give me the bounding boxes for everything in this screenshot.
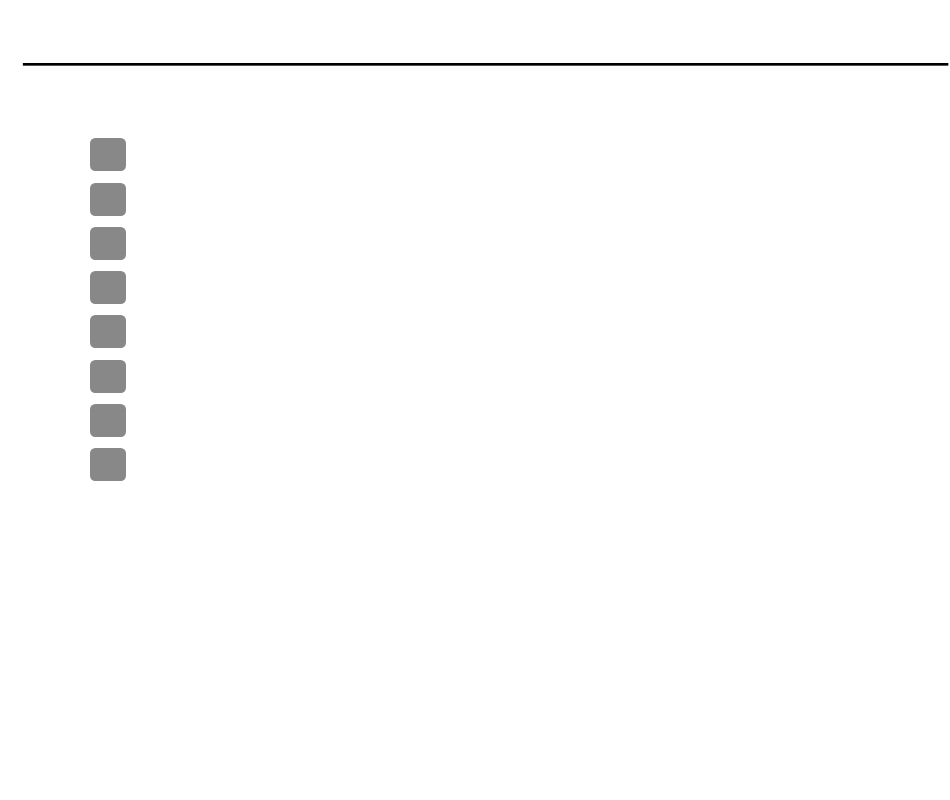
- button[interactable]: List item 4: [0, 265, 950, 309]
- other: Item icon: [90, 183, 126, 216]
- button[interactable]: List item 5: [0, 309, 950, 354]
- button[interactable]: List item 8: [0, 442, 950, 487]
- other: Item icon: [90, 271, 126, 304]
- other: Item icon: [90, 227, 126, 260]
- button[interactable]: List item 2: [0, 177, 950, 221]
- other: Item icon: [90, 448, 126, 481]
- other: Item icon: [90, 404, 126, 437]
- other: Item icon: [90, 360, 126, 393]
- button[interactable]: List item 1: [0, 132, 950, 177]
- button[interactable]: List item 7: [0, 398, 950, 442]
- button[interactable]: List item 6: [0, 354, 950, 398]
- other: Item icon: [90, 315, 126, 348]
- other: Item icon: [90, 138, 126, 171]
- button[interactable]: List item 3: [0, 221, 950, 265]
